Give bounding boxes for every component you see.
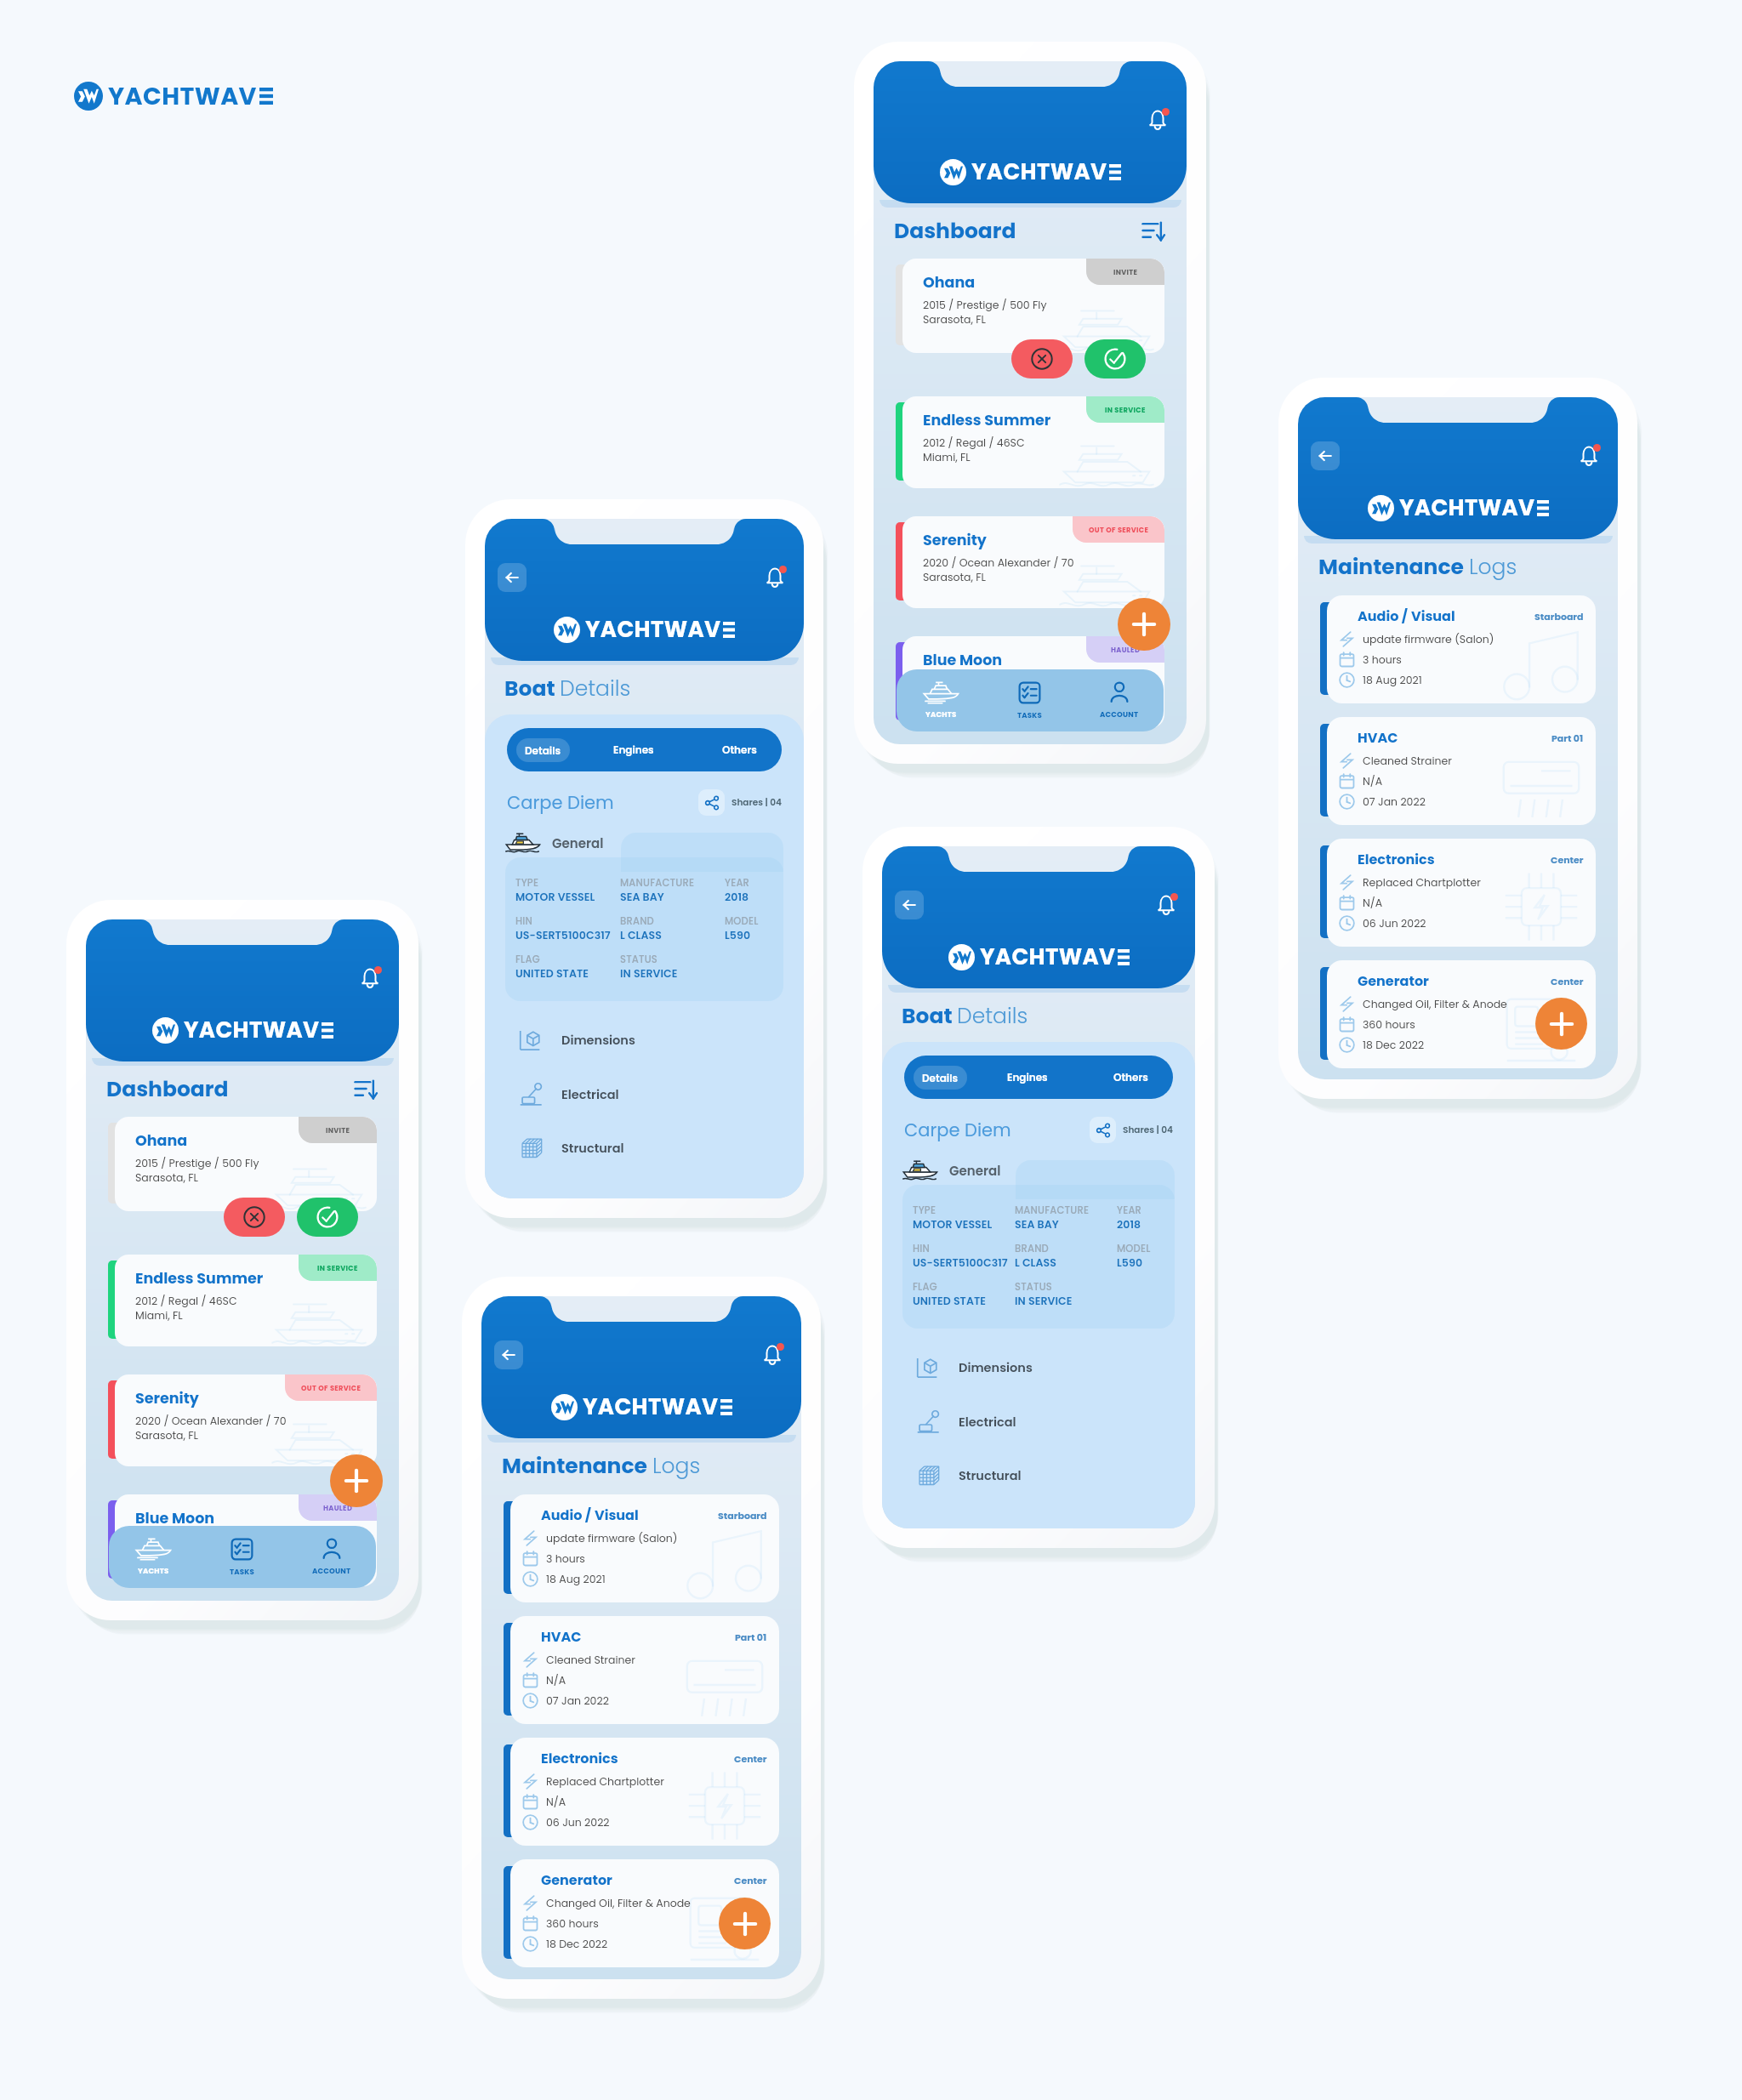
button[interactable]: Sort: [1141, 219, 1166, 244]
button[interactable]: Share: [698, 789, 725, 816]
staticText: BRAND: [620, 914, 654, 928]
button[interactable]: YACHTS: [109, 1526, 197, 1588]
staticText: Structural: [959, 1467, 1022, 1484]
staticText: 3 hours: [1363, 652, 1402, 667]
staticText: ACCOUNT: [312, 1566, 351, 1576]
button[interactable]: Back: [498, 563, 527, 592]
staticText: 18 Aug 2021: [1363, 673, 1422, 687]
staticText: MANUFACTURE: [620, 876, 695, 890]
staticText: SEA BAY: [620, 890, 664, 904]
button[interactable]: Back: [895, 891, 924, 919]
button[interactable]: Others: [1088, 1056, 1173, 1099]
button[interactable]: Notifications: [758, 1340, 787, 1369]
staticText: Tampa, FL: [135, 1548, 189, 1562]
staticText: YACHTWAV: [980, 942, 1116, 972]
staticText: General: [552, 834, 604, 852]
button[interactable]: Sort: [353, 1077, 379, 1102]
staticText: Serenity: [135, 1388, 199, 1409]
button[interactable]: Notifications: [1152, 891, 1181, 919]
button[interactable]: OUT OF SERVICE: [902, 516, 1164, 608]
button[interactable]: Accept invite: [297, 1198, 358, 1237]
button[interactable]: Decline invite: [224, 1198, 285, 1237]
staticText: Details: [957, 1001, 1028, 1031]
button[interactable]: Electrical: [485, 1082, 804, 1107]
button[interactable]: Dimensions: [882, 1355, 1195, 1380]
button[interactable]: Generator: [1327, 960, 1596, 1068]
button[interactable]: Decline invite: [1011, 339, 1073, 378]
staticText: Endless Summer: [135, 1268, 264, 1289]
button[interactable]: YACHTS: [897, 669, 985, 731]
button[interactable]: IN SERVICE: [902, 396, 1164, 488]
button[interactable]: Engines: [570, 728, 697, 771]
staticText: 07 Jan 2022: [546, 1693, 609, 1708]
staticText: FLAG: [515, 953, 540, 966]
button[interactable]: Notifications: [760, 563, 789, 592]
button[interactable]: ACCOUNT: [1074, 669, 1164, 731]
button[interactable]: HAULED: [902, 636, 1164, 728]
button[interactable]: Electronics: [510, 1738, 779, 1846]
button[interactable]: Audio /: [1327, 595, 1596, 703]
staticText: ACCOUNT: [1100, 709, 1139, 720]
staticText: IN SERVICE: [1015, 1294, 1073, 1308]
button[interactable]: Add yacht: [330, 1454, 383, 1507]
button[interactable]: Electronics: [1327, 839, 1596, 947]
staticText: Part 01: [735, 1630, 767, 1643]
button[interactable]: Notifications: [1574, 441, 1603, 470]
button[interactable]: Structural: [882, 1463, 1195, 1488]
button[interactable]: Share: [1090, 1117, 1116, 1143]
button[interactable]: Audio /: [510, 1494, 779, 1602]
staticText: Blue Moon: [923, 650, 1003, 671]
staticText: Engines: [1007, 1070, 1048, 1084]
staticText: 06 Jun 2022: [1363, 916, 1426, 930]
staticText: YEAR: [725, 876, 750, 890]
staticText: Structural: [561, 1140, 624, 1157]
button[interactable]: INVITE: [115, 1117, 377, 1211]
staticText: 07 Jan 2022: [1363, 794, 1426, 809]
button[interactable]: HVAC: [1327, 717, 1596, 825]
button[interactable]: TASKS: [985, 669, 1074, 731]
staticText: 2015 / Prestige / 500 Fly: [135, 1156, 259, 1170]
staticText: INVITE: [1113, 267, 1138, 276]
button[interactable]: TASKS: [197, 1526, 287, 1588]
button[interactable]: ACCOUNT: [287, 1526, 376, 1588]
staticText: 2020 / Ocean Alexander / 70: [135, 1414, 287, 1428]
button[interactable]: Accept invite: [1084, 339, 1146, 378]
staticText: 3 hours: [546, 1551, 585, 1566]
button[interactable]: Back: [494, 1340, 523, 1369]
staticText: N/A: [1363, 774, 1383, 788]
button[interactable]: Others: [697, 728, 782, 771]
staticText: Engines: [613, 743, 654, 757]
button[interactable]: Generator: [510, 1859, 779, 1967]
button[interactable]: Details: [516, 738, 570, 762]
button[interactable]: Engines: [967, 1056, 1088, 1099]
button[interactable]: OUT OF SERVICE: [115, 1374, 377, 1466]
button[interactable]: INVITE: [902, 259, 1164, 353]
button[interactable]: Dimensions: [485, 1027, 804, 1052]
staticText: INVITE: [326, 1125, 350, 1135]
staticText: YACHTWAV: [583, 1391, 719, 1422]
button[interactable]: Notifications: [356, 964, 384, 993]
button[interactable]: Add yacht: [1118, 598, 1170, 651]
staticText: Sarasota, FL: [923, 570, 986, 584]
button[interactable]: Add maintenance log: [719, 1898, 771, 1949]
staticText: OUT OF SERVICE: [301, 1383, 361, 1392]
staticText: TASKS: [230, 1567, 254, 1577]
button[interactable]: Electrical: [882, 1409, 1195, 1434]
button[interactable]: HVAC: [510, 1616, 779, 1724]
staticText: Visual: [1411, 606, 1455, 625]
staticText: IN SERVICE: [620, 966, 678, 981]
staticText: YACHTWAV: [971, 157, 1107, 187]
button[interactable]: HAULED: [115, 1494, 377, 1586]
staticText: Miami, FL: [923, 450, 971, 464]
staticText: Electrical: [959, 1414, 1016, 1431]
staticText: N/A: [1363, 896, 1383, 910]
button[interactable]: Notifications: [1143, 105, 1172, 134]
button[interactable]: Details: [914, 1066, 967, 1090]
staticText: HVAC: [541, 1627, 582, 1646]
staticText: Visual: [595, 1505, 639, 1524]
button[interactable]: Add maintenance log: [1535, 998, 1587, 1050]
button[interactable]: Structural: [485, 1135, 804, 1160]
staticText: TASKS: [1017, 710, 1042, 720]
button[interactable]: IN SERVICE: [115, 1255, 377, 1346]
button[interactable]: Back: [1311, 441, 1340, 470]
